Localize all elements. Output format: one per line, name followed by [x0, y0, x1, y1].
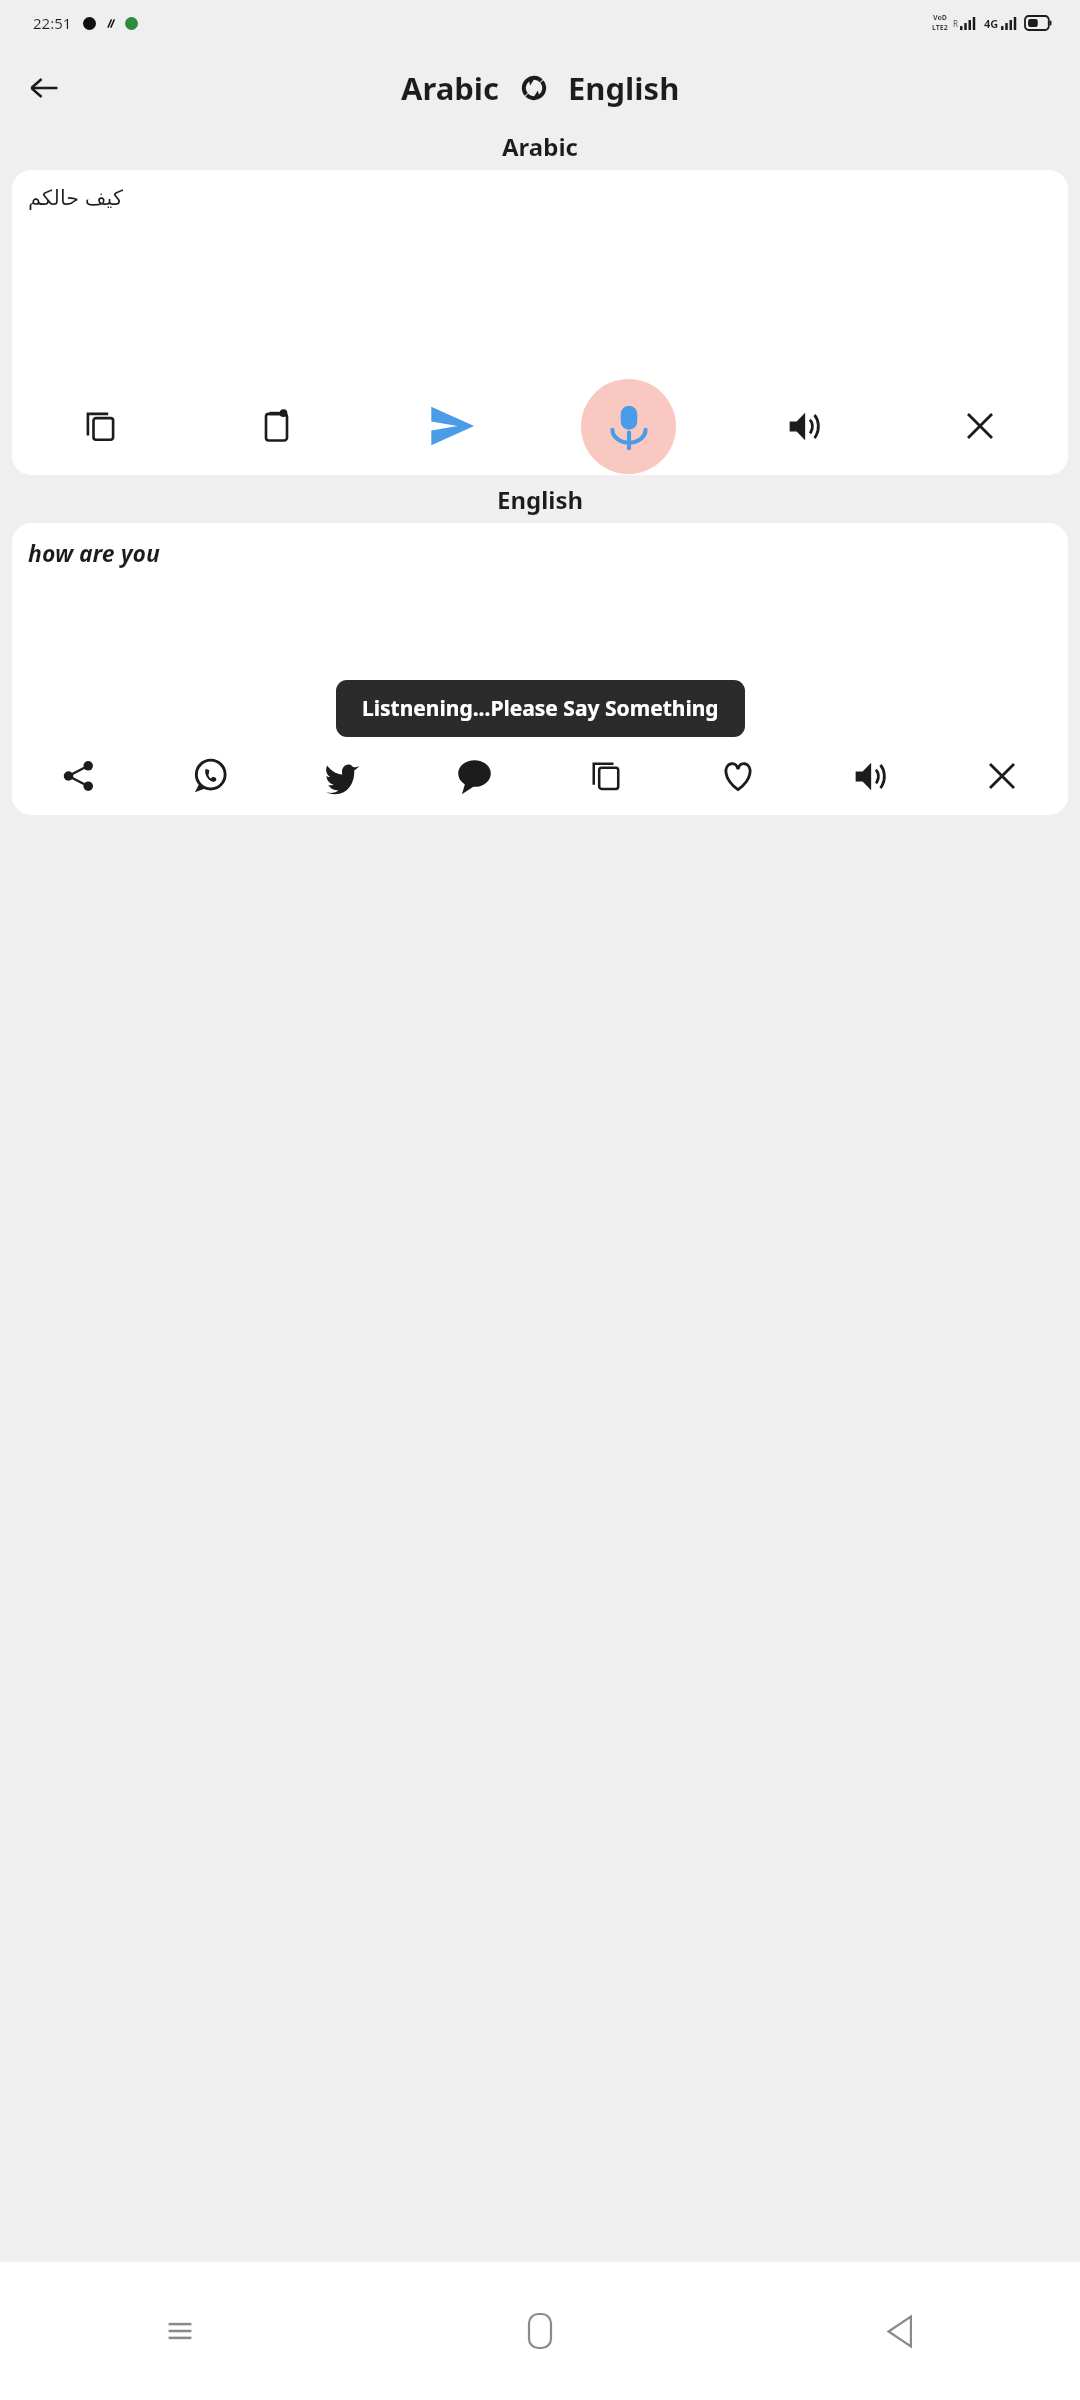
button[interactable]: Recents: [0, 2262, 360, 2400]
button[interactable]: Paste: [188, 377, 364, 475]
staticText: how are you: [28, 537, 160, 568]
button[interactable]: Listen: [716, 377, 892, 475]
button[interactable]: Share: [12, 737, 144, 815]
staticText: 4G: [984, 16, 999, 31]
button[interactable]: Clear: [892, 377, 1068, 475]
button[interactable]: English: [568, 67, 680, 109]
staticText: Arabic: [401, 67, 500, 109]
staticText: English: [497, 483, 584, 516]
button[interactable]: Back: [720, 2262, 1080, 2400]
button[interactable]: Home: [360, 2262, 720, 2400]
button[interactable]: SMS: [408, 737, 540, 815]
button[interactable]: Swap languages: [514, 68, 554, 108]
button[interactable]: Favorite: [672, 737, 804, 815]
staticText: Listnening...Please Say Something: [362, 694, 719, 723]
button[interactable]: Arabic: [401, 67, 500, 109]
button[interactable]: Listen: [804, 737, 936, 815]
button[interactable]: Translate: [364, 377, 540, 475]
staticText: LTE2: [932, 23, 948, 33]
button[interactable]: WhatsApp: [144, 737, 276, 815]
button[interactable]: Back: [16, 60, 72, 116]
button[interactable]: Copy: [12, 377, 188, 475]
staticText: R: [953, 18, 958, 29]
staticText: English: [568, 67, 680, 109]
button[interactable]: Speak: [581, 379, 676, 474]
staticText: VoD: [933, 13, 947, 23]
button[interactable]: Twitter: [276, 737, 408, 815]
staticText: 22:51: [33, 13, 72, 33]
button[interactable]: Copy: [540, 737, 672, 815]
staticText: كيف حالكم: [28, 183, 123, 212]
button[interactable]: Clear: [936, 737, 1068, 815]
staticText: Arabic: [502, 130, 578, 163]
